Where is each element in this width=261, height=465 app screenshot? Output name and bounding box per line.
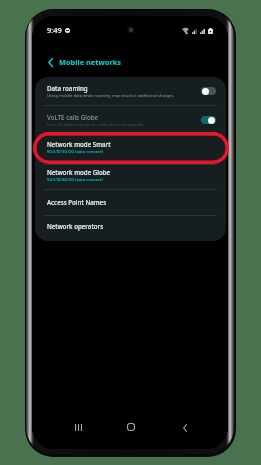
- button[interactable]: Back: [42, 53, 58, 71]
- staticText: Use LTE data networks for calls whenever…: [47, 122, 145, 128]
- button[interactable]: Network mode Globe: [35, 164, 226, 189]
- staticText: Using mobile data while roaming may resu…: [47, 93, 175, 99]
- staticText: 9:49: [47, 25, 62, 35]
- staticText: Network mode Smart: [47, 140, 111, 148]
- button[interactable]: Network operators: [35, 215, 226, 241]
- button[interactable]: Back: [175, 417, 195, 439]
- staticText: Data roaming: [47, 84, 88, 92]
- staticText: Network operators: [47, 222, 104, 230]
- staticText: Access Point Names: [47, 198, 107, 206]
- button[interactable]: Access Point Names: [35, 189, 226, 215]
- button[interactable]: Switch on: [201, 116, 216, 124]
- staticText: VoLTE calls Globe: [47, 113, 99, 121]
- button[interactable]: Network mode Smart: [35, 135, 226, 164]
- button[interactable]: Switch off: [201, 87, 216, 95]
- staticText: Network mode Globe: [47, 168, 111, 176]
- button[interactable]: Recent apps: [68, 416, 88, 438]
- staticText: 5G/LTE/3G/2G (auto connect): [47, 149, 103, 155]
- button[interactable]: Home: [121, 416, 141, 438]
- button[interactable]: Data roaming: [35, 77, 226, 105]
- button[interactable]: VoLTE calls Globe: [35, 105, 226, 135]
- staticText: Mobile networks: [59, 57, 121, 67]
- staticText: 5G/LTE/3G/2G (auto connect): [47, 177, 103, 183]
